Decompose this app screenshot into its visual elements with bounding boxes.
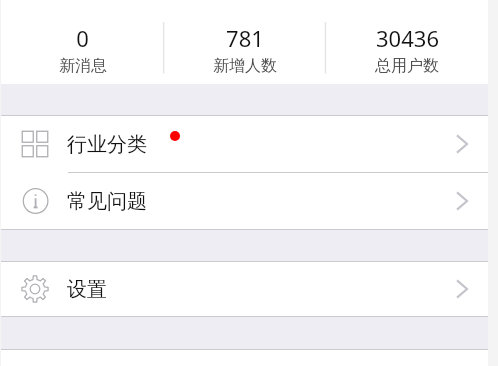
staticText: 0 (76, 23, 89, 53)
staticText: 新增人数 (213, 56, 277, 76)
button[interactable]: 30436 (326, 0, 488, 84)
button[interactable]: 设置 (1, 262, 488, 316)
button[interactable]: 行业分类 (1, 116, 488, 172)
staticText: 781 (226, 23, 264, 53)
button[interactable]: 781 (164, 0, 326, 84)
staticText: 新消息 (59, 56, 107, 76)
staticText: 行业分类 (67, 132, 147, 157)
button[interactable]: 0 (1, 0, 164, 84)
staticText: 常见问题 (67, 189, 147, 214)
button[interactable]: 常见问题 (1, 173, 488, 229)
staticText: 设置 (67, 277, 107, 302)
staticText: 总用户数 (375, 56, 439, 76)
staticText: 30436 (376, 23, 439, 53)
